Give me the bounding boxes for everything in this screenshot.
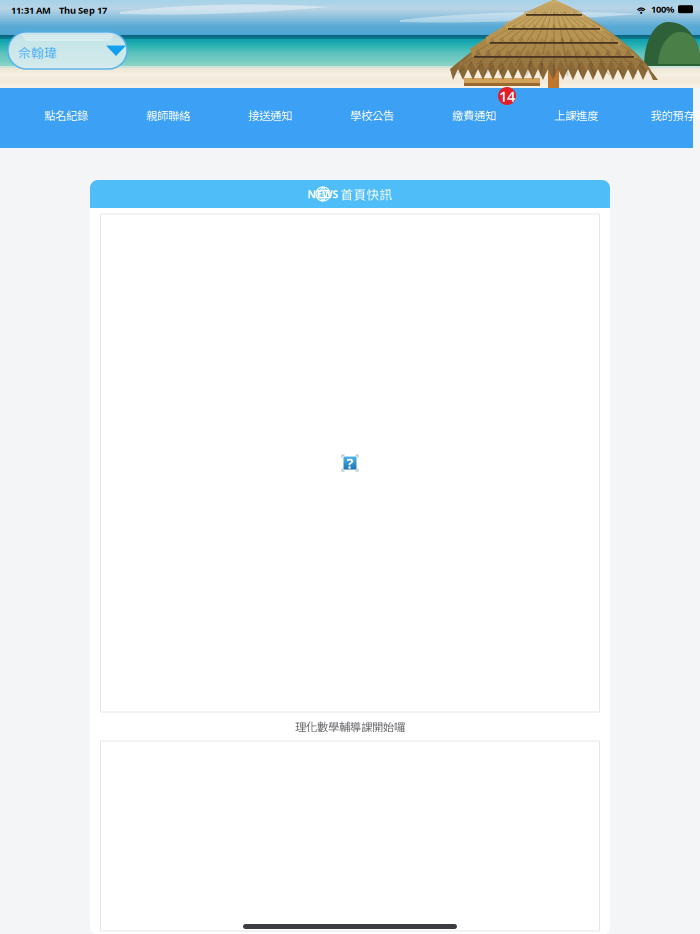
staticText: 接送通知 <box>248 107 292 123</box>
staticText: 學校公告 <box>350 107 394 123</box>
staticText: 100% <box>651 3 674 15</box>
staticText: Thu Sep 17 <box>59 4 107 16</box>
button[interactable]: 接送通知 <box>219 85 321 145</box>
staticText: 首頁快訊 <box>340 185 392 203</box>
staticText: 11:31 AM <box>11 4 51 16</box>
staticText: 14 <box>499 86 515 106</box>
staticText: 佘翰瑋 <box>18 43 57 61</box>
staticText: ? <box>346 453 353 473</box>
button[interactable]: 點名紀錄 <box>15 85 117 145</box>
button[interactable]: 親師聯絡 <box>117 85 219 145</box>
staticText: NEWS <box>307 187 338 201</box>
staticText: 上課進度 <box>554 107 598 123</box>
staticText: 繳費通知 <box>452 107 496 123</box>
staticText: 理化數學輔導課開始囉 <box>295 718 405 735</box>
staticText: 親師聯絡 <box>146 107 190 123</box>
button[interactable]: 佘翰瑋 <box>8 32 127 69</box>
button[interactable]: 我的預存款 <box>627 85 700 145</box>
button[interactable]: 繳費通知 <box>423 85 525 145</box>
button[interactable]: 上課進度 <box>525 85 627 145</box>
button[interactable]: 學校公告 <box>321 85 423 145</box>
staticText: 我的預存款 <box>650 107 700 123</box>
staticText: 點名紀錄 <box>44 107 88 123</box>
